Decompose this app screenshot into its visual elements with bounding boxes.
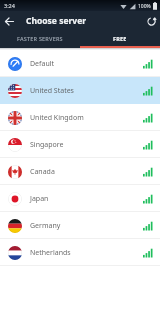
button[interactable]: Germany: [0, 212, 160, 239]
staticText: Netherlands: [30, 248, 71, 258]
staticText: FASTER SERVERS: [17, 35, 63, 42]
staticText: United States: [30, 86, 74, 96]
staticText: FREE: [113, 35, 127, 42]
button[interactable]: Japan: [0, 185, 160, 212]
button[interactable]: United States: [0, 77, 160, 104]
staticText: United Kingdom: [30, 113, 84, 123]
staticText: Germany: [30, 221, 61, 231]
staticText: Singapore: [30, 140, 64, 150]
button[interactable]: Default: [0, 50, 160, 77]
staticText: Choose server: [26, 15, 87, 27]
button[interactable]: FASTER SERVERS: [0, 30, 80, 46]
staticText: 100%: [138, 3, 151, 10]
button[interactable]: Netherlands: [0, 239, 160, 266]
button[interactable]: [0, 12, 18, 30]
staticText: 3:24: [4, 2, 15, 9]
staticText: Canada: [30, 167, 55, 177]
staticText: Japan: [30, 194, 49, 204]
button[interactable]: Singapore: [0, 131, 160, 158]
button[interactable]: FREE: [80, 30, 160, 46]
button[interactable]: Canada: [0, 158, 160, 185]
staticText: Default: [30, 59, 55, 69]
button[interactable]: [142, 12, 160, 30]
button[interactable]: United Kingdom: [0, 104, 160, 131]
